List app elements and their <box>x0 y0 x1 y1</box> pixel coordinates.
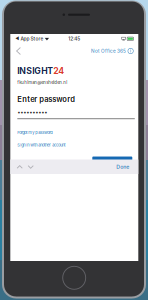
staticText: fkuhlman@enshelden.nl <box>17 80 67 85</box>
staticText: INSIGHT <box>17 65 53 76</box>
staticText: ◀ <box>15 36 19 41</box>
staticText: i <box>130 48 131 54</box>
button[interactable]: Forgot my password <box>17 129 52 136</box>
button[interactable]: Previous field <box>14 159 25 174</box>
staticText: App Store <box>20 36 43 42</box>
staticText: 12:45 <box>68 36 80 42</box>
button[interactable] <box>92 156 132 164</box>
staticText: Enter password <box>17 95 75 104</box>
button[interactable]: Done <box>112 159 133 174</box>
button[interactable]: Not Office 365 <box>91 43 138 58</box>
staticText: Forgot my password <box>17 130 52 135</box>
staticText: 24 <box>53 65 64 76</box>
staticText: Done <box>116 164 129 170</box>
button[interactable]: Sign in with another account <box>17 141 65 149</box>
button[interactable]: Next field <box>25 159 36 174</box>
button[interactable]: Back <box>10 43 26 58</box>
staticText: •••••••••• <box>17 109 47 116</box>
staticText: Sign in with another account <box>17 143 65 147</box>
staticText: Not Office 365 <box>91 48 126 54</box>
